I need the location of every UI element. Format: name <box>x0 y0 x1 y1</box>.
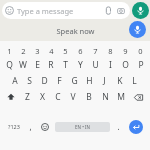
staticText: , <box>29 121 32 132</box>
button[interactable]: 7 <box>88 44 103 57</box>
button[interactable]: 6 <box>73 44 88 57</box>
button[interactable]: Attach <box>104 6 113 15</box>
staticText: I <box>109 59 112 71</box>
staticText: 9 <box>123 46 128 56</box>
button[interactable]: F <box>52 73 67 89</box>
button[interactable]: J <box>97 73 112 89</box>
staticText: K <box>117 75 123 87</box>
button[interactable]: X <box>35 89 50 105</box>
staticText: 3 <box>35 46 40 56</box>
button[interactable]: H <box>82 73 97 89</box>
button[interactable]: M <box>113 89 129 105</box>
staticText: X <box>40 91 45 103</box>
staticText: 4 <box>49 46 54 56</box>
staticText: Speak now <box>56 26 95 36</box>
button[interactable]: EN • IN <box>55 122 110 132</box>
staticText: 1 <box>7 46 12 56</box>
staticText: 0 <box>138 46 143 56</box>
staticText: L <box>132 75 137 87</box>
staticText: D <box>41 75 48 87</box>
button[interactable]: T <box>58 57 73 73</box>
staticText: P <box>138 59 144 71</box>
button[interactable]: V <box>65 89 81 105</box>
staticText: ?123 <box>8 123 20 130</box>
button[interactable]: . <box>112 105 125 148</box>
button[interactable]: Type a message <box>2 2 130 19</box>
staticText: M <box>117 91 125 103</box>
staticText: C <box>55 91 61 103</box>
staticText: V <box>70 91 76 103</box>
staticText: Q <box>6 59 13 71</box>
button[interactable]: 1 <box>2 44 16 57</box>
button[interactable]: C <box>50 89 65 105</box>
staticText: R <box>48 59 54 71</box>
button[interactable]: , <box>24 105 37 148</box>
staticText: N <box>102 91 109 103</box>
button[interactable]: Y <box>73 57 88 73</box>
button[interactable]: R <box>44 57 58 73</box>
button[interactable]: 9 <box>118 44 133 57</box>
staticText: H <box>86 75 93 87</box>
button[interactable]: Camera <box>117 7 125 15</box>
button[interactable]: 4 <box>44 44 58 57</box>
button[interactable]: Shift <box>2 89 20 105</box>
staticText: Type a message <box>17 6 104 16</box>
button[interactable]: O <box>118 57 133 73</box>
button[interactable]: D <box>37 73 52 89</box>
button[interactable]: B <box>81 89 97 105</box>
button[interactable]: 0 <box>133 44 148 57</box>
button[interactable]: 2 <box>16 44 30 57</box>
button[interactable]: Voice input <box>129 21 146 38</box>
staticText: 5 <box>63 46 68 56</box>
button[interactable]: Enter <box>129 120 143 134</box>
button[interactable]: W <box>16 57 30 73</box>
staticText: 8 <box>108 46 113 56</box>
staticText: 6 <box>78 46 83 56</box>
staticText: U <box>92 59 99 71</box>
button[interactable]: N <box>97 89 113 105</box>
button[interactable]: L <box>127 73 142 89</box>
staticText: E <box>35 59 40 71</box>
staticText: F <box>57 75 62 87</box>
button[interactable]: G <box>67 73 82 89</box>
staticText: G <box>71 75 78 87</box>
staticText: Y <box>78 59 83 71</box>
button[interactable]: ?123 <box>3 105 24 148</box>
button[interactable]: 3 <box>30 44 44 57</box>
button[interactable]: I <box>103 57 118 73</box>
staticText: W <box>19 59 27 71</box>
button[interactable]: E <box>30 57 44 73</box>
button[interactable]: 8 <box>103 44 118 57</box>
staticText: . <box>117 121 120 132</box>
staticText: Z <box>25 91 30 103</box>
button[interactable]: K <box>112 73 127 89</box>
button[interactable]: 5 <box>58 44 73 57</box>
button[interactable]: Z <box>20 89 35 105</box>
button[interactable]: Emoji <box>37 105 53 148</box>
staticText: J <box>103 75 106 87</box>
button[interactable]: Q <box>2 57 16 73</box>
staticText: B <box>86 91 92 103</box>
staticText: T <box>63 59 68 71</box>
staticText: O <box>122 59 129 71</box>
staticText: A <box>12 75 18 87</box>
button[interactable]: P <box>133 57 148 73</box>
button[interactable]: Backspace <box>129 89 148 105</box>
staticText: 7 <box>93 46 98 56</box>
staticText: S <box>27 75 32 87</box>
staticText: 2 <box>21 46 26 56</box>
button[interactable]: S <box>22 73 37 89</box>
button[interactable]: A <box>8 73 22 89</box>
button[interactable]: U <box>88 57 103 73</box>
staticText: EN • IN <box>75 124 90 130</box>
button[interactable]: Record voice message <box>132 2 149 19</box>
